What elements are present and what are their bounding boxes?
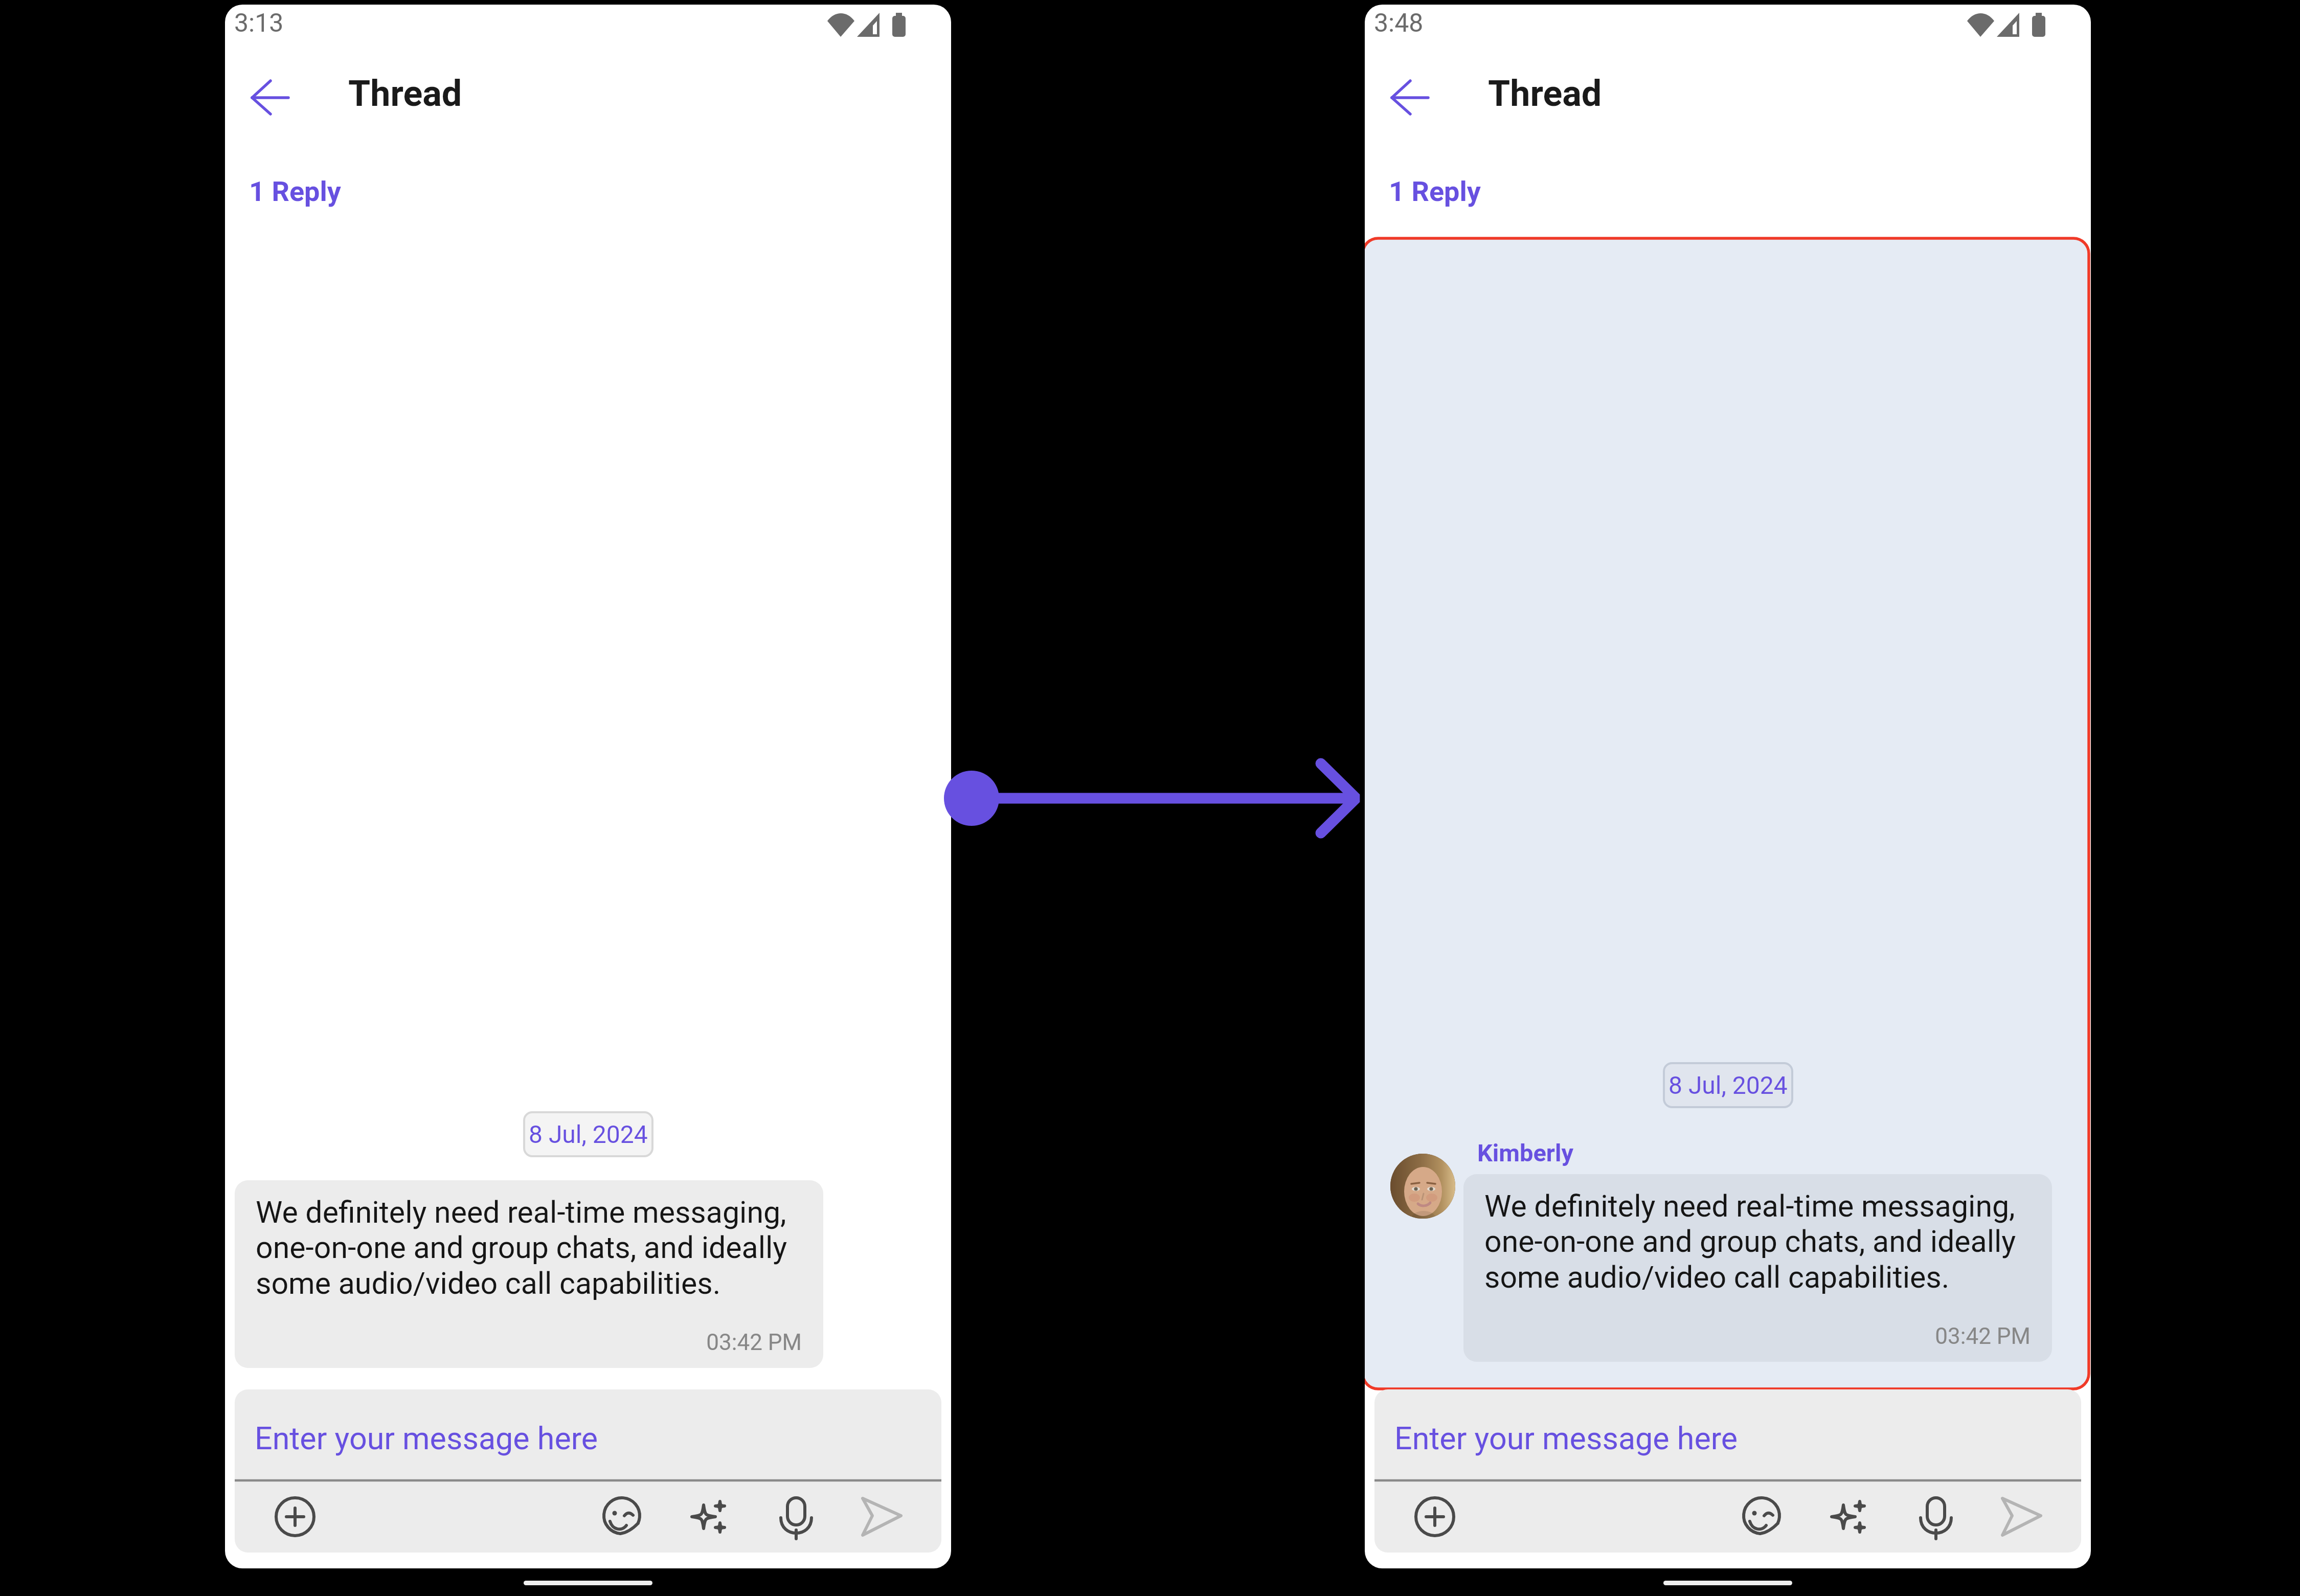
staticText: Enter your message here [255, 1420, 598, 1456]
button[interactable]: 1 Reply [241, 170, 333, 203]
staticText: Thread [348, 73, 462, 115]
button[interactable]: Back [1375, 57, 1447, 128]
button[interactable]: Add attachment [276, 1497, 322, 1543]
button[interactable]: 1 Reply [1381, 170, 1473, 203]
staticText: We definitely need real-time messaging, … [256, 1195, 803, 1301]
button[interactable]: Stickers [1743, 1497, 1789, 1543]
button[interactable]: Voice message [777, 1494, 823, 1540]
button[interactable]: Back [235, 57, 307, 128]
staticText: 1 Reply [249, 175, 341, 208]
staticText: Kimberly [1477, 1139, 1574, 1167]
button[interactable]: 8 Jul, 2024 [1664, 1063, 1792, 1107]
staticText: 3:13 [234, 8, 284, 38]
staticText: 3:48 [1374, 8, 1424, 38]
staticText: 03:42 PM [1463, 1323, 2031, 1350]
button[interactable]: Add attachment [1415, 1497, 1461, 1543]
button[interactable]: 8 Jul, 2024 [524, 1112, 652, 1156]
button[interactable]: AI suggestions [1824, 1497, 1870, 1543]
button[interactable]: Send [2000, 1496, 2046, 1542]
button[interactable]: Enter your message here [1394, 1420, 1738, 1456]
button[interactable]: We definitely need real-time messaging, … [1463, 1174, 2052, 1362]
button[interactable]: AI suggestions [685, 1497, 731, 1543]
staticText: 8 Jul, 2024 [529, 1120, 648, 1149]
staticText: Enter your message here [1394, 1420, 1738, 1456]
button[interactable]: Stickers [603, 1497, 649, 1543]
button[interactable]: Enter your message here [255, 1420, 598, 1456]
staticText: We definitely need real-time messaging, … [1484, 1188, 2032, 1295]
button[interactable]: Send [861, 1496, 907, 1542]
button[interactable]: Voice message [1916, 1494, 1963, 1540]
button[interactable]: We definitely need real-time messaging, … [235, 1180, 823, 1368]
staticText: 03:42 PM [235, 1329, 802, 1356]
staticText: Thread [1488, 73, 1602, 115]
staticText: 8 Jul, 2024 [1668, 1071, 1788, 1099]
staticText: 1 Reply [1389, 175, 1481, 208]
